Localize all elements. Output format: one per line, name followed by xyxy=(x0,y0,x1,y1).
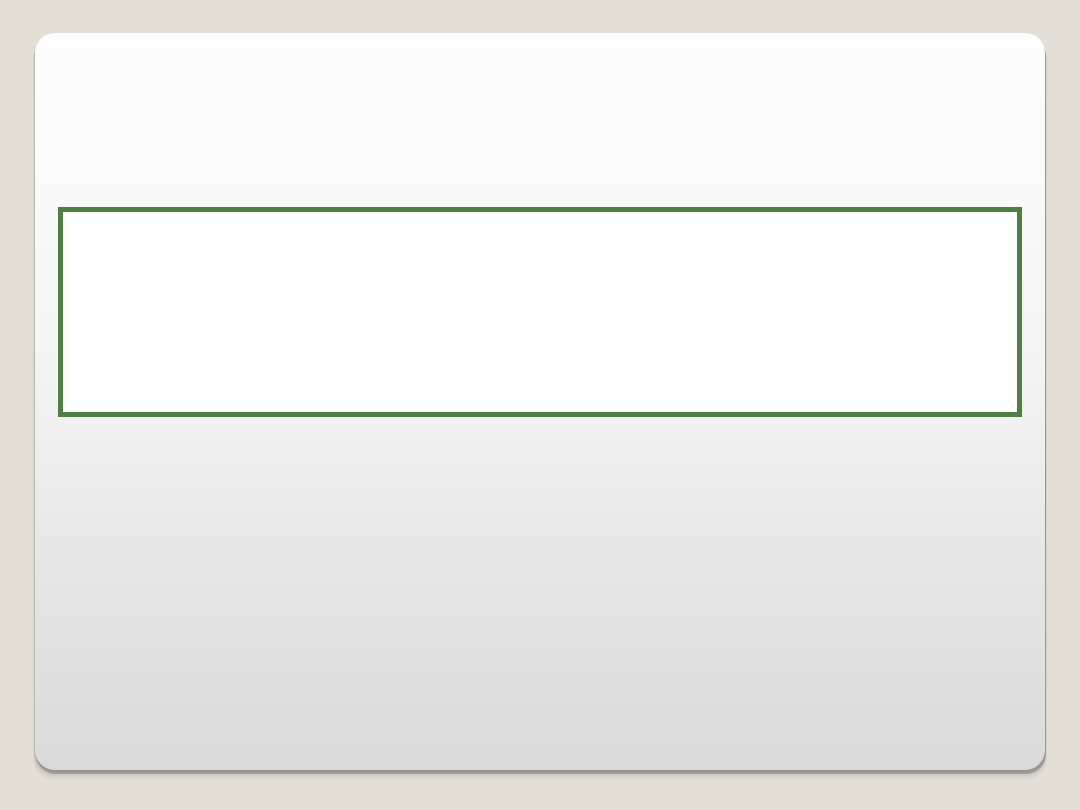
button[interactable]: Text placeholder xyxy=(58,207,1022,417)
button[interactable]: Slide content area xyxy=(35,33,1045,770)
